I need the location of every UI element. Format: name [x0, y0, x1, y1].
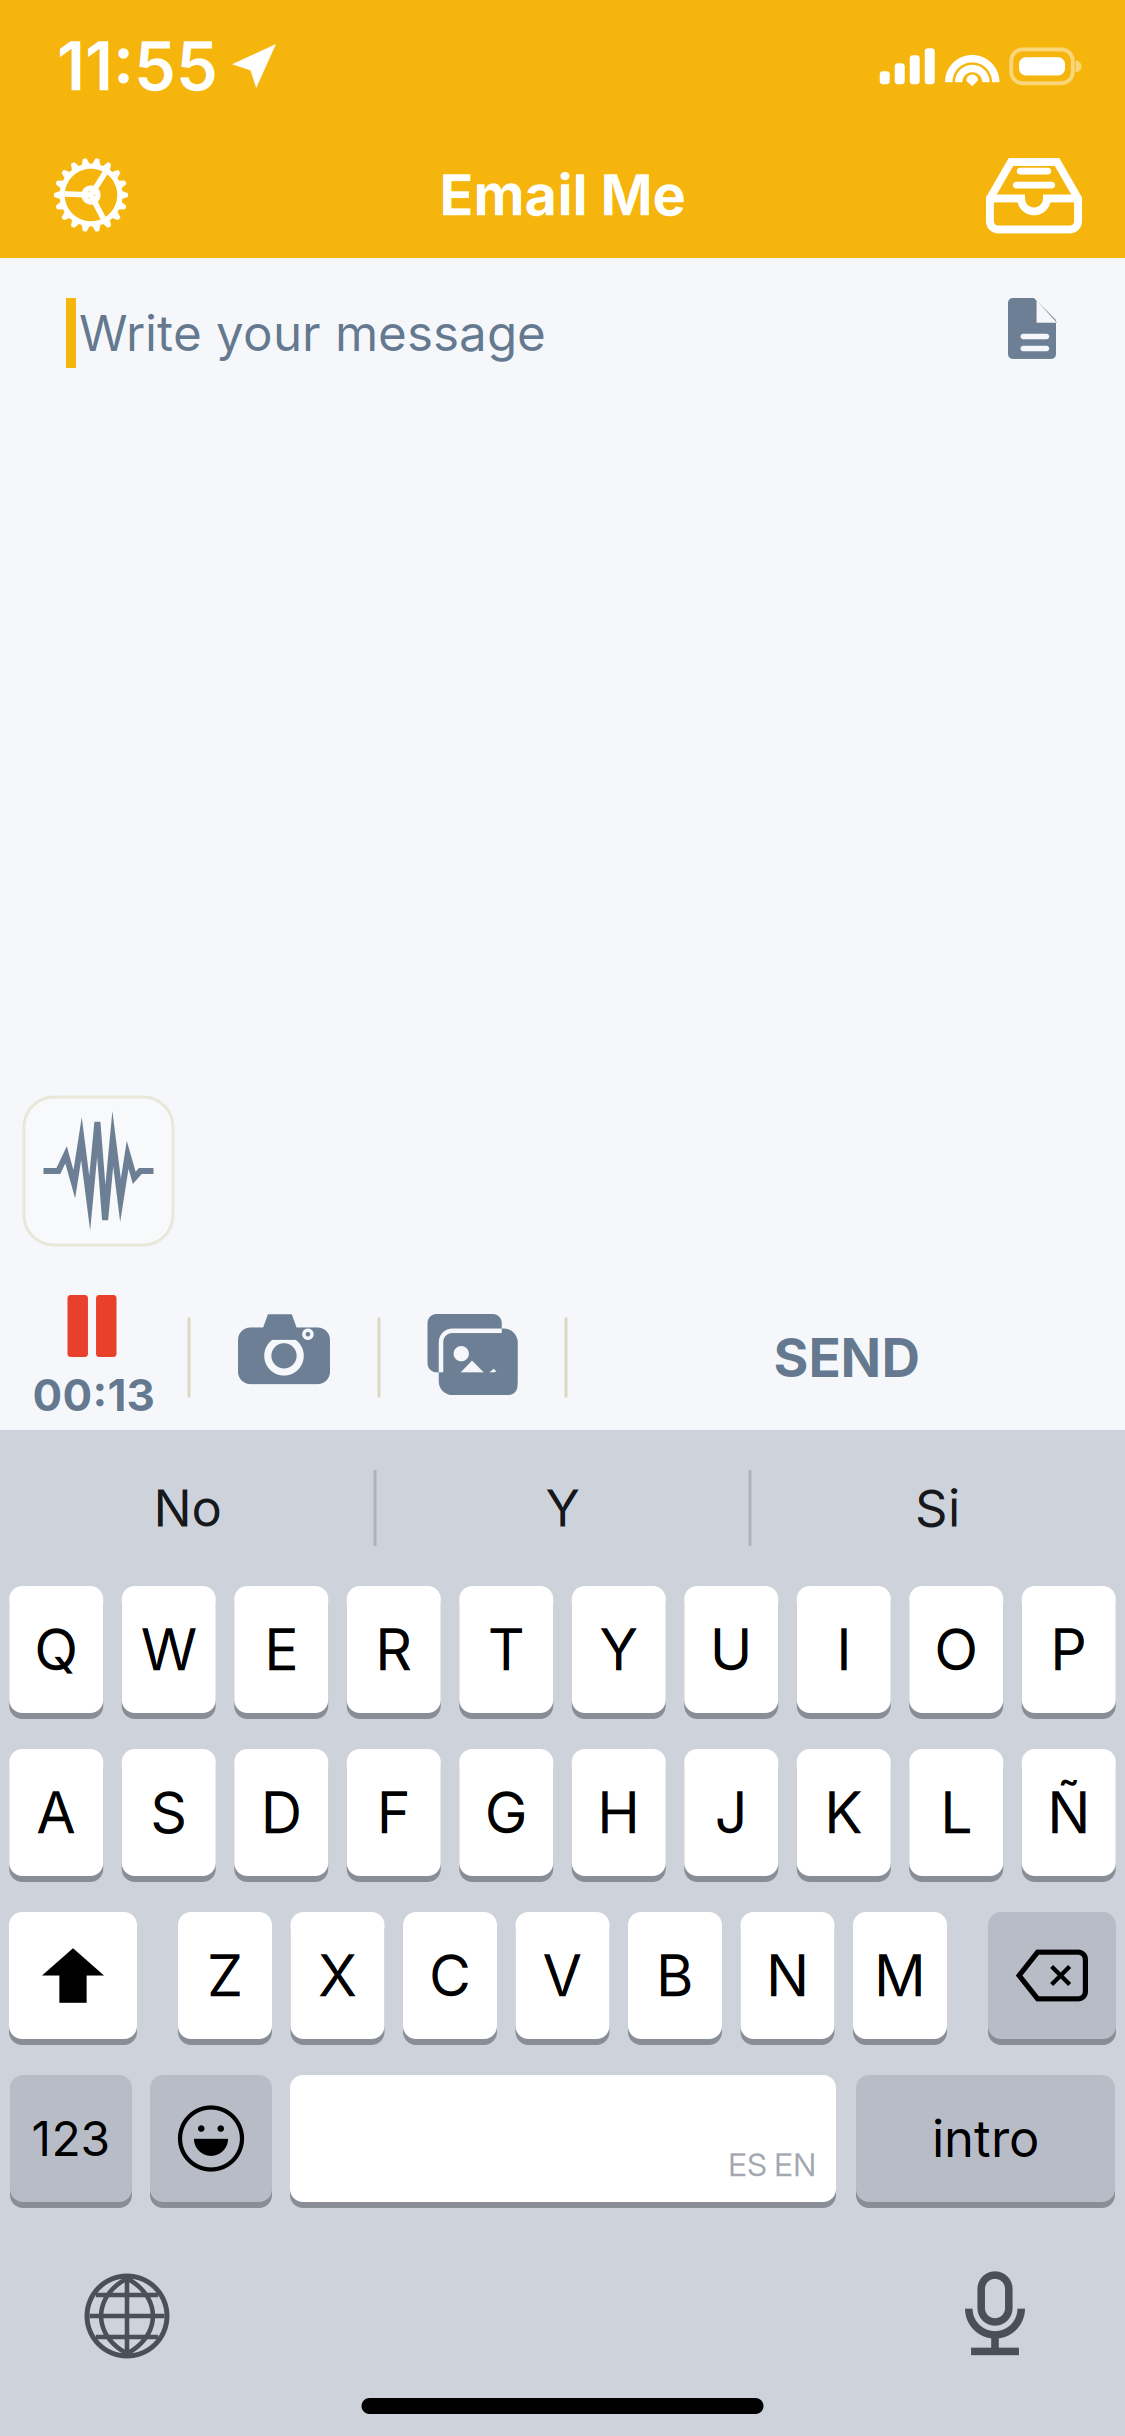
- button[interactable]: 123: [10, 2075, 132, 2206]
- button[interactable]: X: [290, 1912, 384, 2043]
- staticText: Ñ: [1047, 1778, 1090, 1847]
- button[interactable]: E: [234, 1586, 328, 1717]
- button[interactable]: Audio recording: [24, 1097, 173, 1245]
- staticText: Email Me: [439, 161, 685, 229]
- button[interactable]: V: [515, 1912, 609, 2043]
- button[interactable]: Z: [178, 1912, 272, 2043]
- staticText: 00:13: [32, 1368, 154, 1422]
- staticText: ES: [728, 2145, 767, 2184]
- staticText: 11:55: [57, 26, 218, 106]
- staticText: Si: [915, 1477, 960, 1539]
- button[interactable]: Y: [376, 1448, 748, 1568]
- staticText: intro: [932, 2108, 1039, 2169]
- staticText: W: [141, 1615, 197, 1684]
- staticText: EN: [774, 2145, 816, 2184]
- button[interactable]: Settings: [36, 140, 146, 250]
- button[interactable]: Camera: [190, 1276, 377, 1439]
- button[interactable]: Q: [9, 1586, 103, 1717]
- button[interactable]: Shift: [9, 1912, 137, 2043]
- staticText: F: [377, 1778, 411, 1847]
- button[interactable]: T: [459, 1586, 553, 1717]
- button[interactable]: B: [628, 1912, 722, 2043]
- staticText: Z: [207, 1941, 243, 2010]
- button[interactable]: Attach document: [1002, 298, 1062, 364]
- button[interactable]: D: [234, 1749, 328, 1880]
- button[interactable]: Emoji: [150, 2075, 272, 2206]
- button[interactable]: W: [122, 1586, 216, 1717]
- button[interactable]: R: [347, 1586, 441, 1717]
- button[interactable]: No: [1, 1448, 373, 1568]
- button[interactable]: A: [9, 1749, 103, 1880]
- staticText: P: [1050, 1615, 1087, 1684]
- button[interactable]: intro: [856, 2075, 1115, 2206]
- staticText: R: [375, 1615, 412, 1684]
- staticText: T: [488, 1615, 525, 1684]
- staticText: V: [542, 1941, 582, 2010]
- button[interactable]: G: [459, 1749, 553, 1880]
- button[interactable]: Inbox: [979, 140, 1089, 250]
- button[interactable]: Si: [751, 1448, 1123, 1568]
- staticText: M: [874, 1941, 926, 2010]
- staticText: C: [429, 1941, 471, 2010]
- staticText: H: [597, 1778, 640, 1847]
- button[interactable]: U: [684, 1586, 778, 1717]
- staticText: D: [261, 1778, 302, 1847]
- button[interactable]: O: [909, 1586, 1003, 1717]
- button[interactable]: Ñ: [1022, 1749, 1116, 1880]
- button[interactable]: J: [684, 1749, 778, 1880]
- staticText: SEND: [773, 1325, 920, 1390]
- button[interactable]: C: [403, 1912, 497, 2043]
- staticText: G: [485, 1778, 528, 1847]
- staticText: K: [824, 1778, 863, 1847]
- button[interactable]: Pause recording 00:13: [0, 1285, 187, 1430]
- staticText: S: [150, 1778, 187, 1847]
- button[interactable]: Space: [290, 2075, 836, 2206]
- button[interactable]: SEND: [567, 1285, 1125, 1430]
- staticText: I: [836, 1615, 851, 1684]
- button[interactable]: H: [572, 1749, 666, 1880]
- button[interactable]: N: [740, 1912, 834, 2043]
- staticText: O: [934, 1615, 978, 1684]
- staticText: Y: [545, 1477, 579, 1539]
- button[interactable]: S: [122, 1749, 216, 1880]
- staticText: 123: [31, 2109, 110, 2168]
- button[interactable]: M: [853, 1912, 947, 2043]
- staticText: E: [264, 1615, 298, 1684]
- button[interactable]: Y: [572, 1586, 666, 1717]
- button[interactable]: Delete: [988, 1912, 1116, 2043]
- staticText: J: [715, 1778, 748, 1847]
- button[interactable]: Change keyboard: [87, 2271, 167, 2361]
- staticText: Y: [599, 1615, 638, 1684]
- staticText: No: [153, 1477, 221, 1539]
- button[interactable]: P: [1022, 1586, 1116, 1717]
- staticText: N: [766, 1941, 809, 2010]
- staticText: Write your message: [79, 303, 546, 363]
- button[interactable]: K: [797, 1749, 891, 1880]
- button[interactable]: Dictation: [949, 2268, 1041, 2363]
- staticText: X: [318, 1941, 357, 2010]
- staticText: A: [36, 1778, 76, 1847]
- staticText: Q: [34, 1615, 78, 1684]
- staticText: B: [656, 1941, 694, 2010]
- button[interactable]: F: [347, 1749, 441, 1880]
- button[interactable]: I: [797, 1586, 891, 1717]
- button[interactable]: Photo library: [380, 1282, 564, 1433]
- staticText: L: [940, 1778, 972, 1847]
- button[interactable]: L: [909, 1749, 1003, 1880]
- staticText: U: [710, 1615, 753, 1684]
